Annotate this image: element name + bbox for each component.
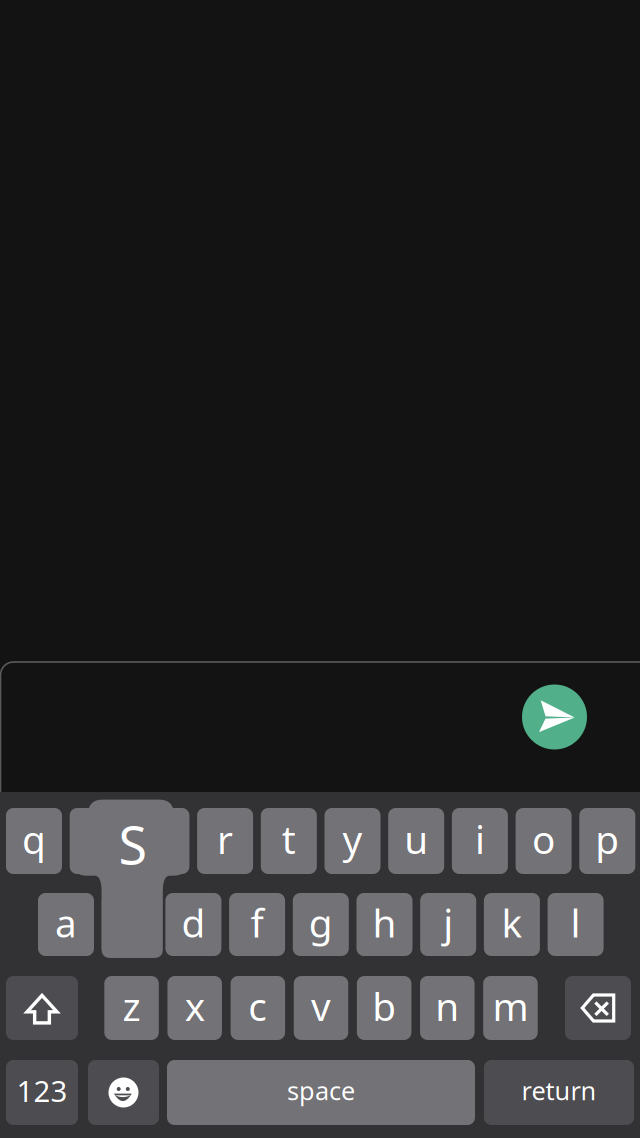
staticText: n — [435, 980, 459, 1032]
staticText: a — [55, 897, 77, 948]
staticText: t — [282, 813, 296, 865]
button[interactable]: k — [484, 893, 540, 956]
button[interactable]: Emoji — [88, 1060, 159, 1125]
button[interactable]: w — [70, 808, 126, 874]
staticText: k — [501, 897, 522, 948]
button[interactable]: v — [294, 976, 348, 1040]
staticText: h — [372, 897, 396, 948]
staticText: z — [123, 980, 141, 1032]
staticText: i — [475, 813, 485, 865]
staticText: return — [521, 1074, 596, 1107]
button[interactable]: e — [133, 808, 189, 874]
staticText: u — [404, 813, 428, 865]
button[interactable]: x — [167, 976, 222, 1040]
staticText: p — [595, 813, 619, 865]
staticText: j — [443, 897, 453, 948]
staticText: x — [185, 980, 205, 1032]
button[interactable]: space — [167, 1060, 475, 1125]
staticText: g — [309, 897, 333, 948]
staticText: d — [181, 897, 205, 948]
button[interactable]: q — [6, 808, 62, 874]
button[interactable]: a — [38, 893, 94, 956]
button[interactable]: l — [548, 893, 604, 956]
staticText: o — [532, 813, 555, 865]
button[interactable]: z — [104, 976, 159, 1040]
staticText: c — [248, 980, 267, 1032]
button[interactable]: o — [516, 808, 572, 874]
button[interactable]: p — [579, 808, 635, 874]
staticText: l — [571, 897, 581, 948]
staticText: S — [118, 810, 147, 879]
staticText: 123 — [16, 1071, 67, 1110]
button[interactable]: b — [357, 976, 411, 1040]
button[interactable]: Delete — [565, 976, 631, 1040]
staticText: f — [251, 897, 264, 948]
button[interactable]: m — [483, 976, 538, 1040]
staticText: q — [22, 813, 46, 865]
staticText: space — [287, 1074, 355, 1107]
button[interactable]: i — [452, 808, 508, 874]
button[interactable]: y — [324, 808, 380, 874]
button[interactable]: n — [420, 976, 475, 1040]
button[interactable]: Send — [522, 684, 587, 749]
button[interactable]: h — [356, 893, 412, 956]
staticText: m — [492, 980, 528, 1032]
button[interactable]: j — [420, 893, 476, 956]
button[interactable]: r — [197, 808, 253, 874]
staticText: y — [342, 813, 362, 865]
button[interactable]: Shift — [6, 976, 78, 1040]
button[interactable]: f — [229, 893, 285, 956]
button[interactable]: c — [231, 976, 285, 1040]
button[interactable]: 123 — [6, 1060, 78, 1125]
button[interactable]: t — [261, 808, 317, 874]
button[interactable]: return — [484, 1060, 634, 1125]
button[interactable]: u — [388, 808, 444, 874]
button[interactable]: g — [293, 893, 349, 956]
staticText: r — [217, 813, 233, 865]
staticText: v — [311, 980, 331, 1032]
button[interactable]: d — [165, 893, 221, 956]
staticText: b — [372, 980, 396, 1032]
